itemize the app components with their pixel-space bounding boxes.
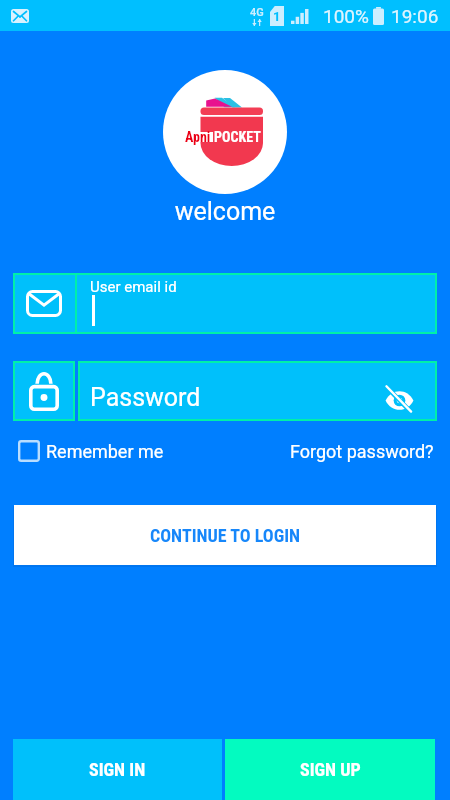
button[interactable]: CONTINUE TO LOGIN [14,505,436,565]
staticText: 19:06 [391,5,439,27]
staticText: SIGN UP [300,759,361,780]
button[interactable]: Password [78,361,437,421]
staticText: 1 [273,9,281,24]
staticText: welcome [0,197,450,226]
staticText: 4G [250,6,264,19]
other: Messages [11,9,29,23]
button[interactable]: Show password [378,380,421,420]
staticText: Forgot password? [290,441,434,462]
button[interactable]: Forgot password? [290,441,434,462]
staticText: SIGN IN [89,759,146,780]
button[interactable]: Remember me [18,437,164,465]
staticText: POCKET [214,129,261,145]
other: Password [29,372,59,411]
staticText: Apni [185,129,211,145]
staticText: CONTINUE TO LOGIN [150,525,301,546]
button[interactable]: Email [13,273,437,334]
staticText: 100% [323,5,369,27]
button[interactable]: Password [13,361,75,421]
staticText: Password [90,383,201,412]
button[interactable]: SIGN IN [13,739,222,800]
staticText: User email id [90,278,177,296]
other: Email [26,290,62,317]
button[interactable]: SIGN UP [225,739,435,800]
staticText: Remember me [46,441,164,462]
